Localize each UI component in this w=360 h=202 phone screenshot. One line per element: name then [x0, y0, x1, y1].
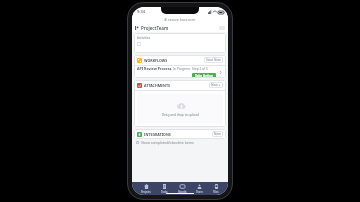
staticText: ProjectTeam	[141, 25, 169, 31]
staticText: Boards	[178, 190, 187, 194]
staticText: Tasks	[161, 190, 168, 194]
staticText: Activities	[137, 36, 151, 40]
button[interactable]: New +	[209, 82, 223, 88]
staticText: API Review Process	[137, 66, 172, 71]
button[interactable]: Drag and drop to upload	[137, 94, 223, 124]
staticText: Show completed/obsolete items	[141, 140, 194, 145]
staticText: New +	[211, 83, 221, 87]
staticText: ATTACHMENTS	[144, 83, 171, 88]
staticText: Drag and drop to upload	[162, 113, 199, 117]
staticText: WORKFLOWS	[144, 58, 168, 63]
staticText: secure.host.com	[168, 17, 196, 22]
button[interactable]: Team	[195, 184, 204, 194]
button[interactable]: Projects	[140, 184, 152, 194]
staticText: Files	[213, 190, 219, 194]
staticText: New	[214, 132, 221, 136]
staticText: Projects	[141, 190, 151, 194]
button[interactable]: Open workflow	[218, 70, 223, 75]
staticText: Step 2 of 5	[192, 67, 208, 71]
button[interactable]	[136, 141, 139, 144]
button[interactable]: Start Now	[204, 57, 223, 63]
button[interactable]: Files	[212, 184, 220, 194]
button[interactable]: Boards	[177, 184, 188, 194]
staticText: INTEGRATIONS	[144, 132, 171, 137]
staticText: Take Action	[195, 74, 213, 77]
button[interactable]: New	[212, 131, 223, 137]
staticText: In Progress	[173, 67, 191, 71]
staticText: 9:34	[137, 9, 145, 14]
button[interactable]: Take Action	[192, 73, 216, 78]
staticText: Team	[196, 190, 203, 194]
button[interactable]: Tasks	[160, 184, 169, 194]
staticText: Start Now	[206, 58, 221, 62]
